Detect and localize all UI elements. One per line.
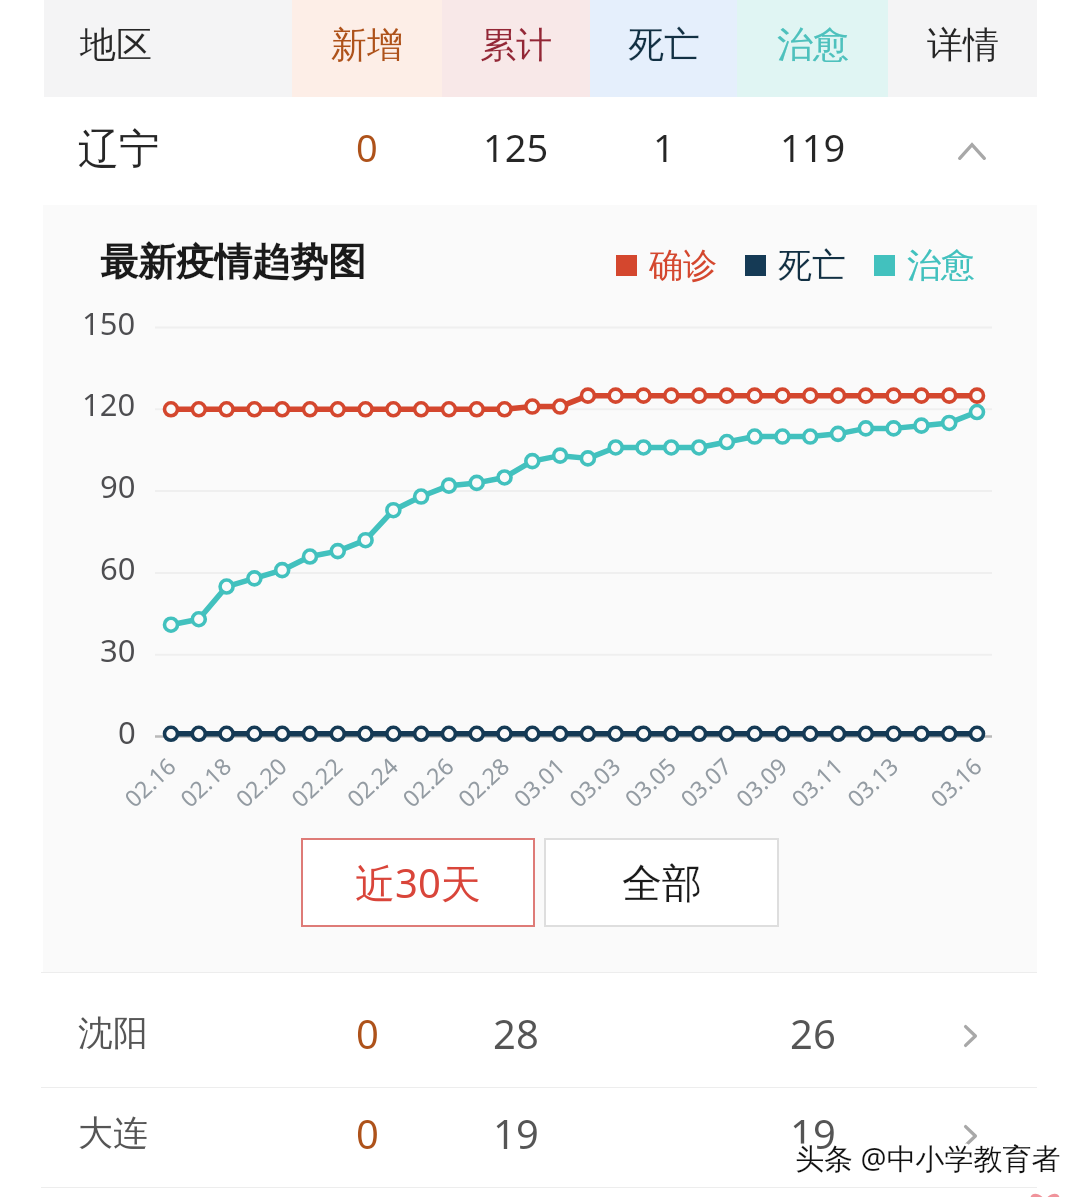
button[interactable]: 近30天	[301, 838, 535, 927]
button[interactable]: 累计	[442, 0, 590, 97]
other: Collapse	[897, 97, 1046, 205]
staticText: 死亡	[628, 22, 700, 67]
staticText: 28	[493, 1006, 539, 1060]
button[interactable]: 新增	[292, 0, 442, 97]
button[interactable]: 全部	[544, 838, 779, 927]
staticText: 0	[356, 121, 378, 173]
staticText: 治愈	[777, 22, 849, 67]
staticText: 近30天	[355, 855, 481, 910]
staticText: 119	[780, 121, 846, 173]
staticText: 治愈	[907, 244, 975, 287]
button[interactable]: 确诊	[616, 237, 717, 293]
staticText: 死亡	[778, 244, 846, 287]
staticText: 大连	[78, 1111, 148, 1155]
staticText: 最新疫情趋势图	[100, 238, 366, 286]
button[interactable]: 大连	[0, 1083, 1080, 1183]
button[interactable]: 详情	[888, 0, 1037, 97]
staticText: 详情	[927, 22, 999, 67]
other: Details	[896, 978, 1045, 1093]
staticText: 地区	[80, 22, 152, 67]
staticText: 0	[356, 1106, 379, 1160]
staticText: 26	[790, 1006, 836, 1060]
staticText: 0	[356, 1006, 379, 1060]
other: Details	[896, 1086, 1045, 1186]
staticText: 新增	[331, 22, 403, 67]
staticText: 辽宁	[78, 124, 160, 176]
staticText: 1	[653, 121, 675, 173]
button[interactable]: 地区	[44, 0, 292, 97]
staticText: 累计	[480, 22, 552, 67]
staticText: 确诊	[649, 244, 717, 287]
staticText: 全部	[622, 858, 702, 908]
staticText: 沈阳	[78, 1011, 148, 1055]
button[interactable]: 死亡	[590, 0, 737, 97]
staticText: 19	[790, 1106, 836, 1160]
button[interactable]: 辽宁	[0, 97, 1080, 205]
staticText: 125	[483, 121, 549, 173]
button[interactable]: 治愈	[874, 237, 975, 293]
button[interactable]: 治愈	[737, 0, 888, 97]
button[interactable]: 死亡	[745, 237, 846, 293]
staticText: 19	[493, 1106, 539, 1160]
button[interactable]: 沈阳	[0, 975, 1080, 1090]
